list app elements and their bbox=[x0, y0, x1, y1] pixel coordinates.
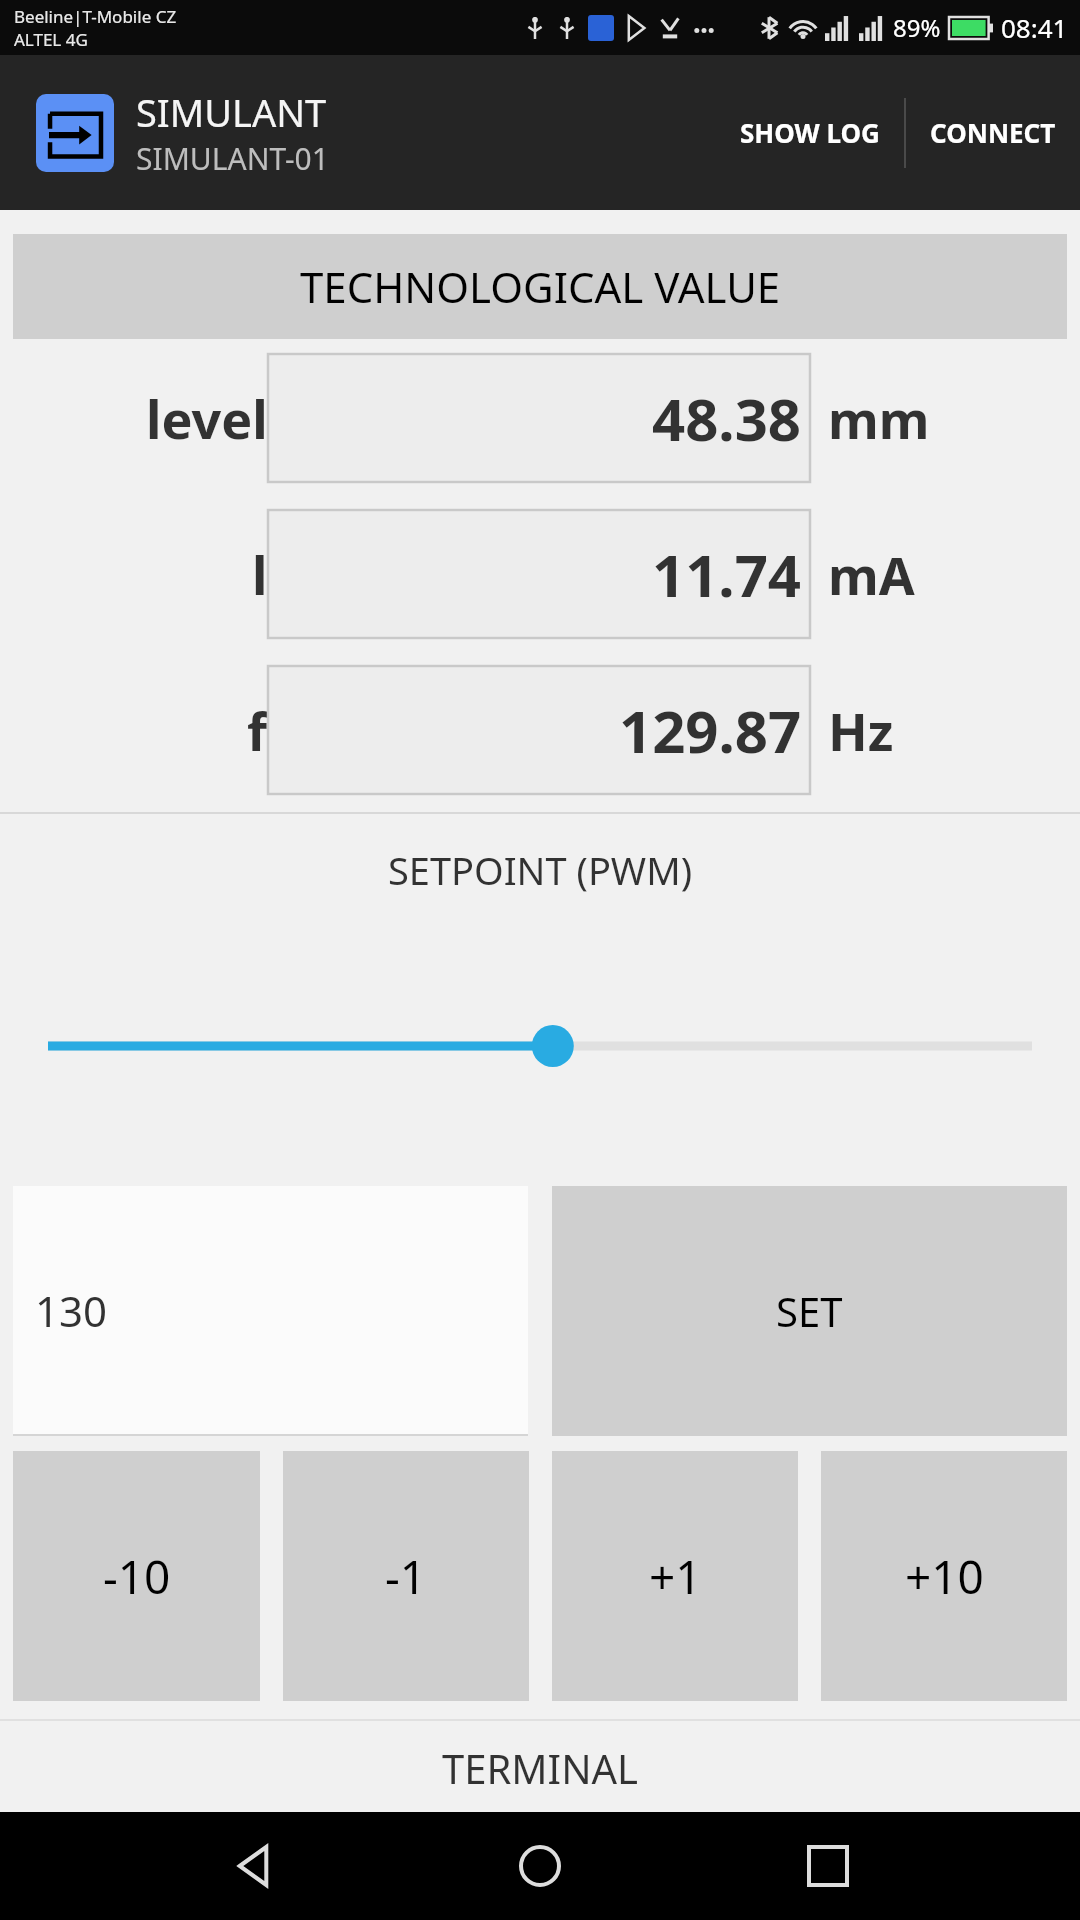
button[interactable]: Recents bbox=[793, 1831, 863, 1901]
button[interactable]: Home bbox=[505, 1831, 575, 1901]
button[interactable]: -1 bbox=[283, 1451, 529, 1701]
staticText: TECHNOLOGICAL VALUE bbox=[300, 258, 781, 315]
staticText: ALTEL 4G bbox=[14, 28, 88, 51]
staticText: SETPOINT (PWM) bbox=[0, 844, 1080, 896]
button[interactable]: SHOW LOG bbox=[716, 97, 904, 168]
staticText: SIMULANT-01 bbox=[136, 138, 329, 179]
staticText: l bbox=[252, 539, 268, 610]
staticText: 130 bbox=[35, 1282, 108, 1339]
button[interactable]: SET bbox=[552, 1186, 1067, 1436]
button[interactable]: +10 bbox=[821, 1451, 1067, 1701]
staticText: 08:41 bbox=[1001, 10, 1068, 45]
staticText: CONNECT bbox=[930, 115, 1056, 150]
button[interactable]: 11.74 bbox=[268, 510, 810, 638]
button[interactable]: 48.38 bbox=[268, 354, 810, 482]
staticText: Beeline|T-Mobile CZ bbox=[14, 5, 177, 28]
staticText: Hz bbox=[828, 695, 894, 766]
button[interactable]: +1 bbox=[552, 1451, 798, 1701]
staticText: -1 bbox=[385, 1545, 427, 1608]
staticText: TERMINAL bbox=[0, 1741, 1080, 1795]
staticText: mm bbox=[828, 383, 930, 454]
staticText: SET bbox=[776, 1284, 843, 1338]
staticText: SIMULANT bbox=[136, 86, 327, 138]
button[interactable]: -10 bbox=[13, 1451, 260, 1701]
button[interactable] bbox=[48, 1016, 1032, 1076]
staticText: 129.87 bbox=[619, 691, 802, 770]
staticText: f bbox=[247, 695, 268, 766]
staticText: 48.38 bbox=[652, 379, 802, 458]
staticText: 89% bbox=[893, 11, 941, 44]
button[interactable]: TECHNOLOGICAL VALUE bbox=[13, 234, 1067, 339]
staticText: +1 bbox=[649, 1545, 702, 1608]
staticText: +10 bbox=[905, 1545, 984, 1608]
staticText: level bbox=[146, 383, 268, 454]
button[interactable]: 130 bbox=[13, 1186, 528, 1434]
staticText: 11.74 bbox=[652, 535, 802, 614]
button[interactable]: Back bbox=[218, 1831, 288, 1901]
staticText: SHOW LOG bbox=[740, 115, 880, 150]
staticText: mA bbox=[828, 539, 915, 610]
staticText: -10 bbox=[103, 1545, 171, 1608]
button[interactable]: CONNECT bbox=[906, 97, 1080, 168]
button[interactable]: 129.87 bbox=[268, 666, 810, 794]
